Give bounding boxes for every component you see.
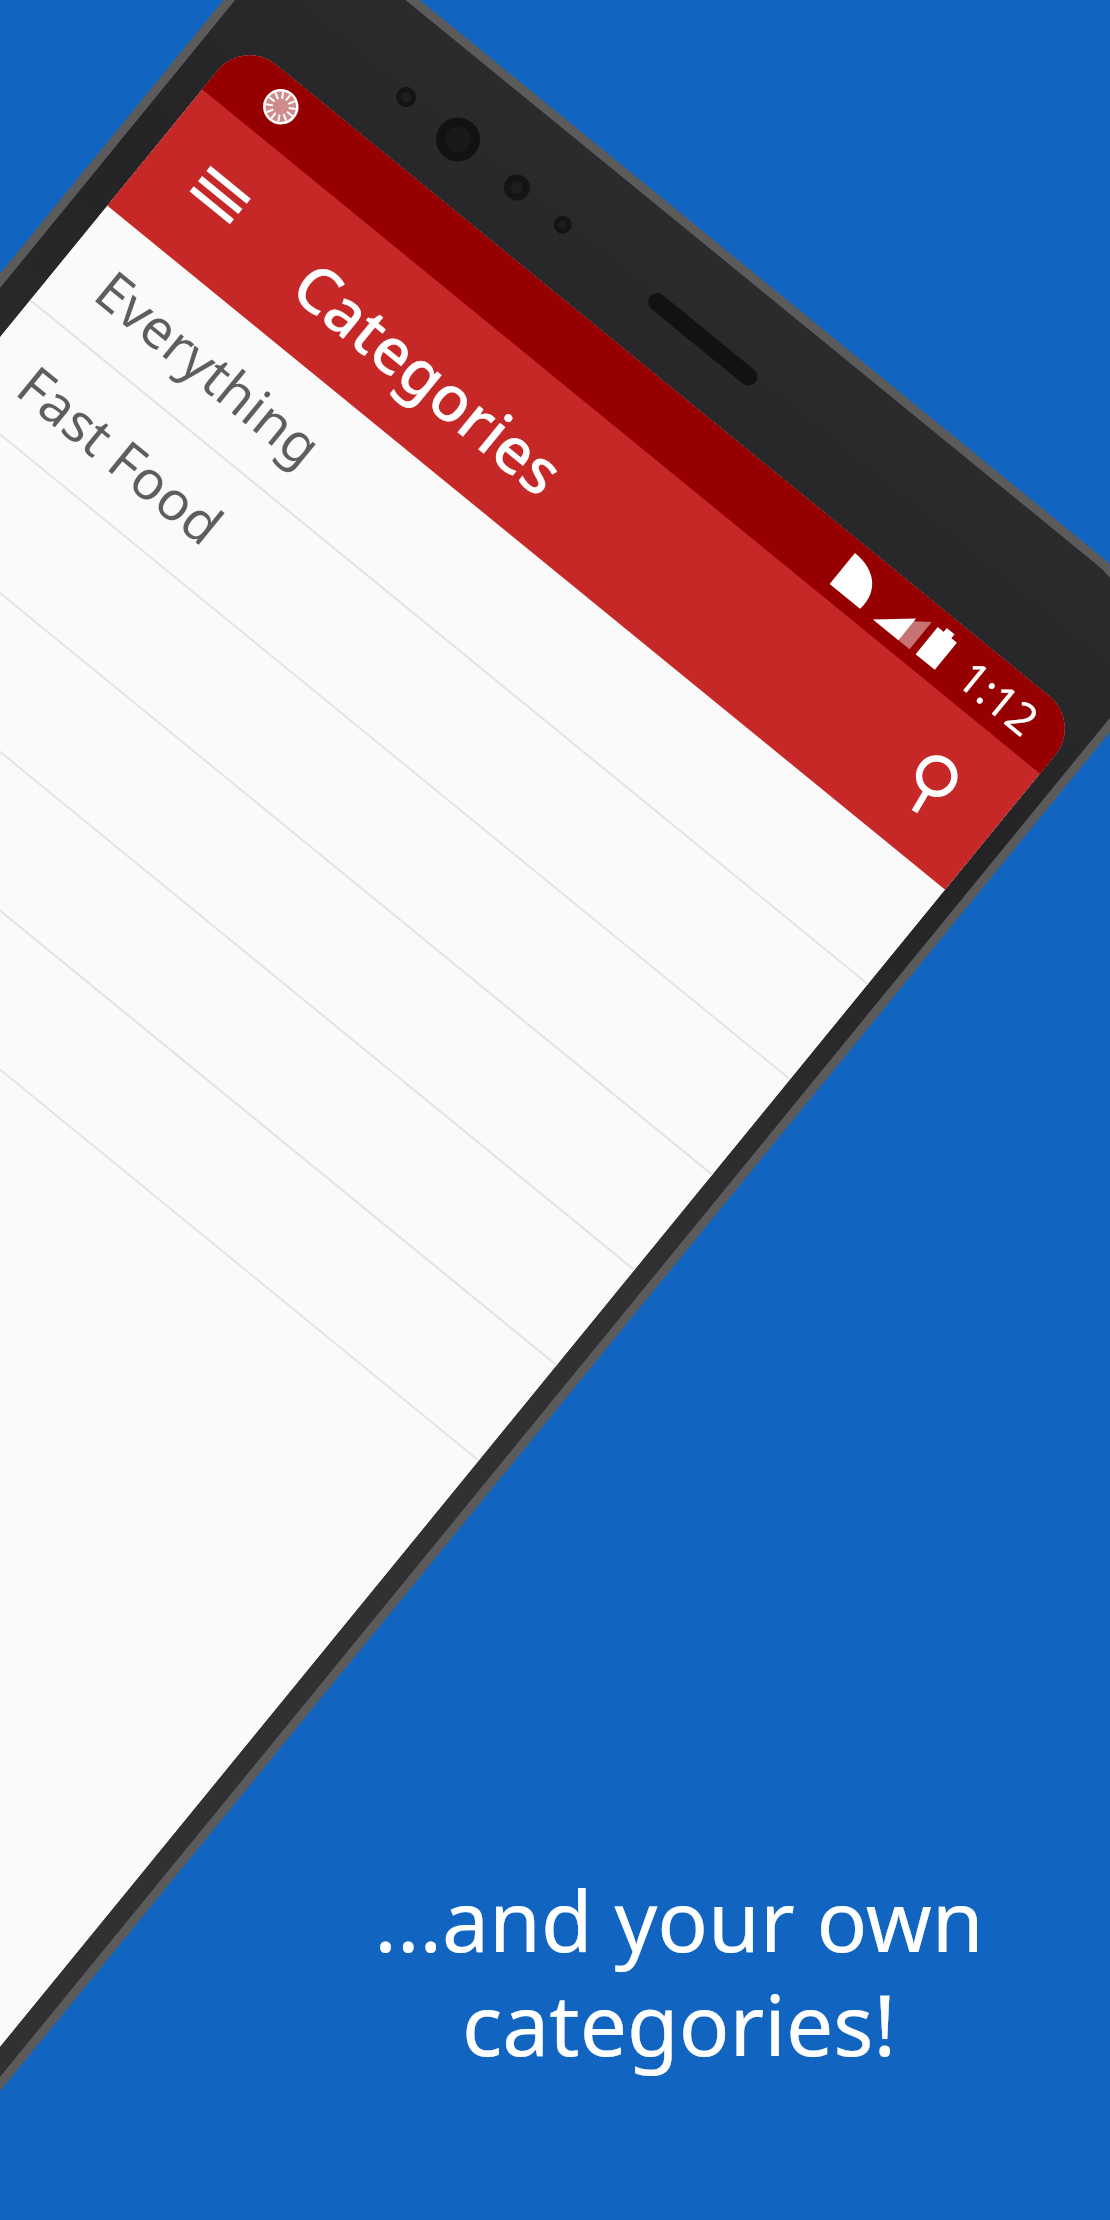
button[interactable] bbox=[0, 396, 790, 1176]
button[interactable]: Search bbox=[860, 711, 1006, 858]
staticText: Categories bbox=[276, 242, 582, 514]
button[interactable]: Fast Food bbox=[0, 301, 867, 1080]
staticText: ...and your own categories! bbox=[124, 1862, 1110, 2081]
staticText: Everything bbox=[81, 253, 338, 482]
button[interactable] bbox=[0, 586, 634, 1366]
button[interactable]: Everything bbox=[29, 205, 945, 985]
button[interactable] bbox=[0, 682, 556, 1461]
staticText: 1:12 bbox=[946, 646, 1052, 748]
button[interactable]: Open navigation menu bbox=[147, 121, 294, 268]
staticText: Fast Food bbox=[3, 348, 240, 561]
button[interactable] bbox=[0, 491, 712, 1271]
